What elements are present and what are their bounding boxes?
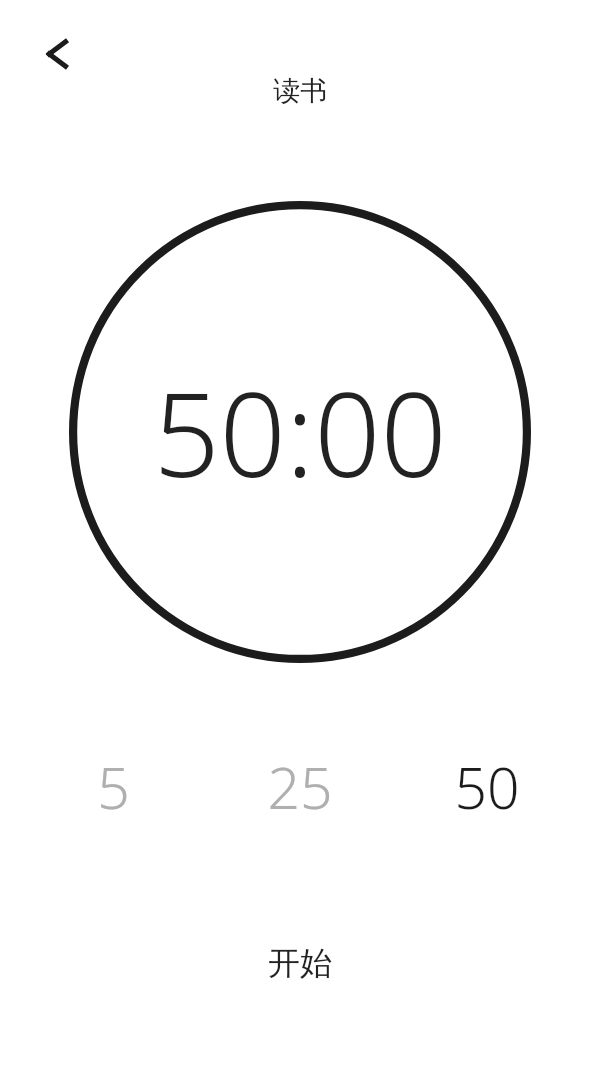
staticText: 25 [267, 748, 333, 820]
button[interactable]: Timer 50 minutes [69, 201, 531, 663]
button[interactable]: 50 [374, 748, 600, 820]
staticText: 50 [454, 748, 520, 820]
staticText: 开始 [268, 943, 332, 983]
staticText: 50:00 [153, 353, 447, 511]
button[interactable]: Back [24, 22, 88, 86]
staticText: 读书 [273, 74, 327, 108]
button[interactable]: 5 [0, 748, 226, 820]
button[interactable]: 25 [226, 748, 374, 820]
staticText: 5 [97, 748, 130, 820]
button[interactable]: 开始 [190, 918, 410, 1008]
